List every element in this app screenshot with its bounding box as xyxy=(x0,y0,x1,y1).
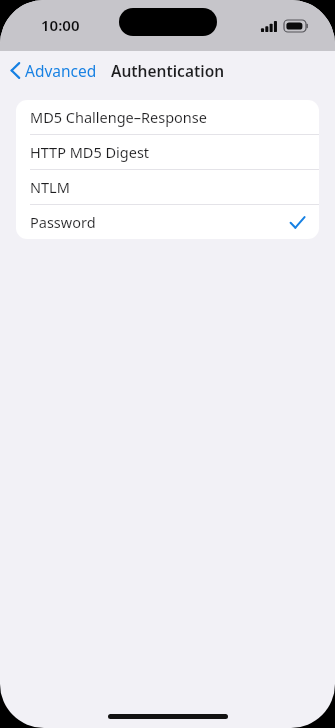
staticText: 10:00 xyxy=(41,15,80,35)
other: Selected xyxy=(290,216,305,229)
staticText: Advanced xyxy=(25,60,97,81)
staticText: NTLM xyxy=(30,177,70,197)
button[interactable]: HTTP MD5 Digest xyxy=(16,135,319,169)
button[interactable]: NTLM xyxy=(16,170,319,204)
staticText: HTTP MD5 Digest xyxy=(30,142,150,162)
button[interactable]: Advanced xyxy=(0,56,107,85)
staticText: Authentication xyxy=(111,60,225,81)
button[interactable]: Password xyxy=(16,205,319,239)
staticText: MD5 Challenge–Response xyxy=(30,107,207,127)
button[interactable]: MD5 Challenge–Response xyxy=(16,100,319,134)
staticText: Password xyxy=(30,212,96,232)
